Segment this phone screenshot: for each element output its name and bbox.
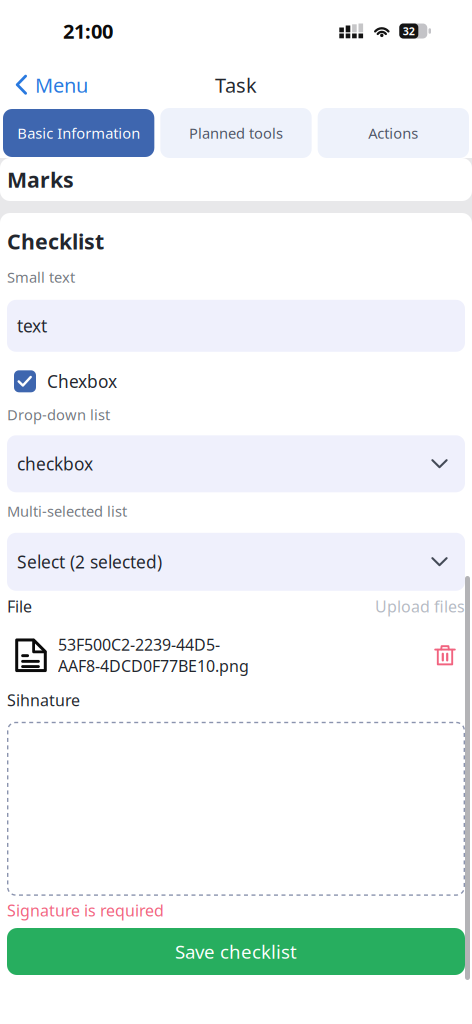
button[interactable]: text [7,300,465,352]
staticText: Multi-selected list [7,501,127,521]
button[interactable]: Chexbox [7,370,465,393]
staticText: Planned tools [189,123,283,143]
button[interactable]: Select (2 selected) [7,533,465,591]
staticText: Signature is required [7,900,164,921]
staticText: Select (2 selected) [17,550,162,573]
button[interactable]: Menu [0,63,98,107]
staticText: Chexbox [47,370,117,393]
button[interactable]: Actions [318,108,469,158]
staticText: Basic Information [17,123,140,143]
button[interactable]: checkbox [7,435,465,492]
staticText: Sihnature [7,689,80,711]
staticText: Save checklist [175,939,297,964]
staticText: 21:00 [63,18,113,44]
button[interactable]: Upload files [375,596,465,617]
staticText: Task [215,72,257,98]
button[interactable]: Planned tools [160,108,312,158]
staticText: text [17,314,47,337]
staticText: File [7,596,32,617]
staticText: Marks [7,165,74,194]
staticText: Drop-down list [7,405,110,424]
staticText: Upload files [375,596,465,617]
button[interactable]: Basic Information [3,109,154,157]
staticText: 32 [403,24,415,38]
staticText: 53F500C2-2239-44D5-AAF8-4DCD0F77BE10.png [58,634,249,676]
staticText: Actions [368,123,418,143]
staticText: Menu [35,72,88,98]
button[interactable]: Delete file [434,644,456,667]
button[interactable]: Save checklist [7,928,465,975]
staticText: checkbox [17,452,93,475]
staticText: Small text [7,267,75,287]
staticText: Checklist [7,227,104,255]
